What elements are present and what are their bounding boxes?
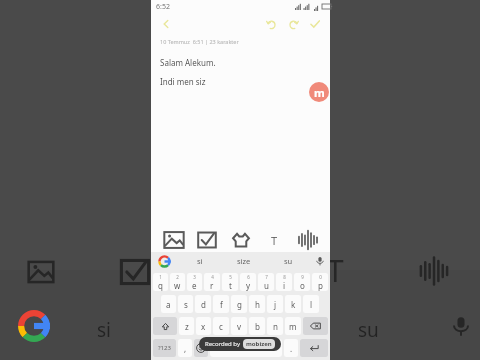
button[interactable]: Drawing [230,229,252,251]
staticText: a [166,299,171,310]
button[interactable]: Backspace [303,317,328,335]
button[interactable]: 3 [187,273,202,291]
button[interactable]: 7 [258,273,274,291]
staticText: si [197,256,203,266]
staticText: t [229,280,232,291]
button[interactable]: Insert image [163,229,185,251]
staticText: su [284,256,293,266]
staticText: o [300,280,305,291]
staticText: f [220,299,223,310]
staticText: p [318,280,323,291]
button[interactable]: su [266,252,310,270]
button[interactable]: Save [306,15,324,33]
staticText: ?123 [158,344,171,352]
staticText: Indi men siz [160,76,206,87]
staticText: T [271,233,278,248]
staticText: 2 [176,274,179,280]
button[interactable]: Emoji [194,339,208,357]
staticText: su [358,317,379,343]
staticText: , [184,343,187,354]
button[interactable]: 0 [312,273,328,291]
staticText: z [185,321,189,332]
button[interactable]: v [231,317,247,335]
button[interactable]: Shift [153,317,177,335]
button[interactable]: 8 [276,273,292,291]
staticText: 4 [211,274,214,280]
staticText: c [219,321,223,332]
staticText: i [283,280,286,291]
button[interactable]: Text format [263,229,285,251]
staticText: v [237,321,242,332]
button[interactable]: c [213,317,229,335]
button[interactable]: 2 [170,273,185,291]
staticText: h [255,299,260,310]
button[interactable]: z [179,317,194,335]
button[interactable]: Checklist [196,229,218,251]
button[interactable]: j [267,295,283,313]
staticText: g [237,299,242,310]
staticText: Recorded by [205,340,240,348]
staticText: . [290,343,293,354]
button[interactable]: a [161,295,176,313]
staticText: 6 [247,274,250,280]
staticText: d [201,299,206,310]
staticText: u [264,280,269,291]
button[interactable]: s [178,295,193,313]
staticText: m [289,321,297,332]
button[interactable]: Enter [300,339,328,357]
button[interactable]: x [196,317,211,335]
staticText: 6:52 [156,2,170,12]
button[interactable]: n [267,317,283,335]
button[interactable]: , [178,339,192,357]
staticText: q [158,280,163,291]
staticText: b [255,321,260,332]
button[interactable]: l [303,295,319,313]
button[interactable]: h [249,295,265,313]
button[interactable]: f [213,295,229,313]
staticText: 9 [301,274,304,280]
staticText: 5 [229,274,232,280]
button[interactable]: 4 [204,273,220,291]
staticText: 8 [283,274,286,280]
button[interactable]: si [177,252,222,270]
button[interactable]: m [285,317,301,335]
staticText: 1 [159,274,162,280]
button[interactable]: . [284,339,298,357]
staticText: 7 [265,274,268,280]
button[interactable]: k [285,295,301,313]
staticText: j [274,299,277,310]
button[interactable]: Google search [151,252,177,270]
button[interactable]: g [231,295,247,313]
button[interactable]: Redo [284,15,302,33]
staticText: 10 Temmuz 6:51 | 23 karakter [160,38,239,45]
staticText: n [273,321,278,332]
button[interactable]: Voice input [297,229,319,251]
staticText: 0 [319,274,322,280]
button[interactable]: d [195,295,211,313]
staticText: k [291,299,296,310]
button[interactable]: 9 [294,273,310,291]
staticText: s [184,299,188,310]
staticText: T [327,250,344,291]
staticText: 3 [193,274,196,280]
button[interactable]: Symbols [153,339,176,357]
button[interactable]: Space [210,339,282,357]
button[interactable]: 1 [153,273,168,291]
staticText: Salam Alekum. [160,57,216,68]
button[interactable]: 6 [240,273,256,291]
button[interactable]: Voice input [310,252,330,270]
staticText: mobizen [246,340,272,348]
button[interactable]: Undo [262,15,280,33]
staticText: r [210,280,214,291]
staticText: x [201,321,206,332]
button[interactable]: size [222,252,266,270]
staticText: m [314,85,325,100]
button[interactable]: Back [157,15,175,33]
button[interactable]: b [249,317,265,335]
staticText: y [246,280,251,291]
staticText: w [174,280,181,291]
button[interactable]: 5 [222,273,238,291]
staticText: si [97,317,112,343]
staticText: e [192,280,197,291]
staticText: l [310,299,313,310]
